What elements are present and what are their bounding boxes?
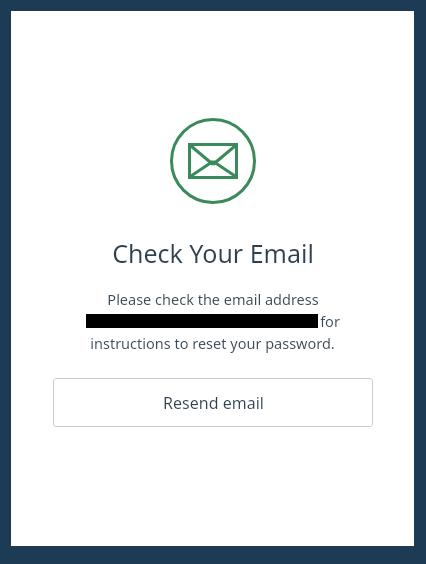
staticText: Resend email bbox=[163, 392, 264, 414]
staticText: Please check the email address bbox=[107, 289, 319, 309]
staticText: Check Your Email bbox=[112, 236, 314, 270]
button[interactable]: Resend email bbox=[53, 378, 373, 427]
staticText: for bbox=[320, 311, 340, 331]
staticText: instructions to reset your password. bbox=[90, 333, 335, 353]
